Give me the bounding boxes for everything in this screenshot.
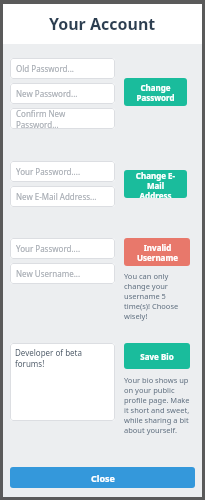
staticText: Your Account (49, 13, 156, 35)
button[interactable]: Your Password.... (10, 238, 115, 259)
staticText: You can only change your username 5 time… (124, 271, 190, 321)
staticText: Your Password.... (16, 243, 81, 254)
button[interactable]: Confirm New Password... (10, 108, 115, 129)
button[interactable]: Invalid Username (124, 238, 190, 266)
staticText: Developer of beta forums! (15, 347, 110, 369)
button[interactable]: Change Password (124, 78, 187, 106)
staticText: New Password... (16, 88, 78, 99)
staticText: New E-Mail Address... (16, 191, 97, 202)
staticText: New Username... (16, 268, 81, 279)
staticText: Your bio shows up on your public profile… (124, 375, 190, 435)
staticText: Old Password... (16, 63, 74, 74)
button[interactable]: New Username... (10, 263, 115, 284)
button[interactable]: Old Password... (10, 58, 115, 79)
staticText: Save Bio (140, 351, 174, 362)
button[interactable]: New E-Mail Address... (10, 186, 115, 207)
button[interactable]: Your Password.... (10, 161, 115, 182)
button[interactable]: Save Bio (124, 343, 190, 369)
button[interactable]: Close (10, 467, 195, 488)
button[interactable]: Developer of beta forums! (10, 343, 115, 421)
button[interactable]: New Password... (10, 83, 115, 104)
staticText: Change Password (136, 82, 175, 103)
staticText: Change E-Mail Address (128, 170, 183, 198)
staticText: Confirm New Password... (16, 108, 109, 129)
staticText: Invalid Username (137, 242, 178, 263)
button[interactable]: Change E-Mail Address (124, 170, 187, 198)
staticText: Your Password.... (16, 166, 81, 177)
staticText: Close (91, 472, 115, 484)
